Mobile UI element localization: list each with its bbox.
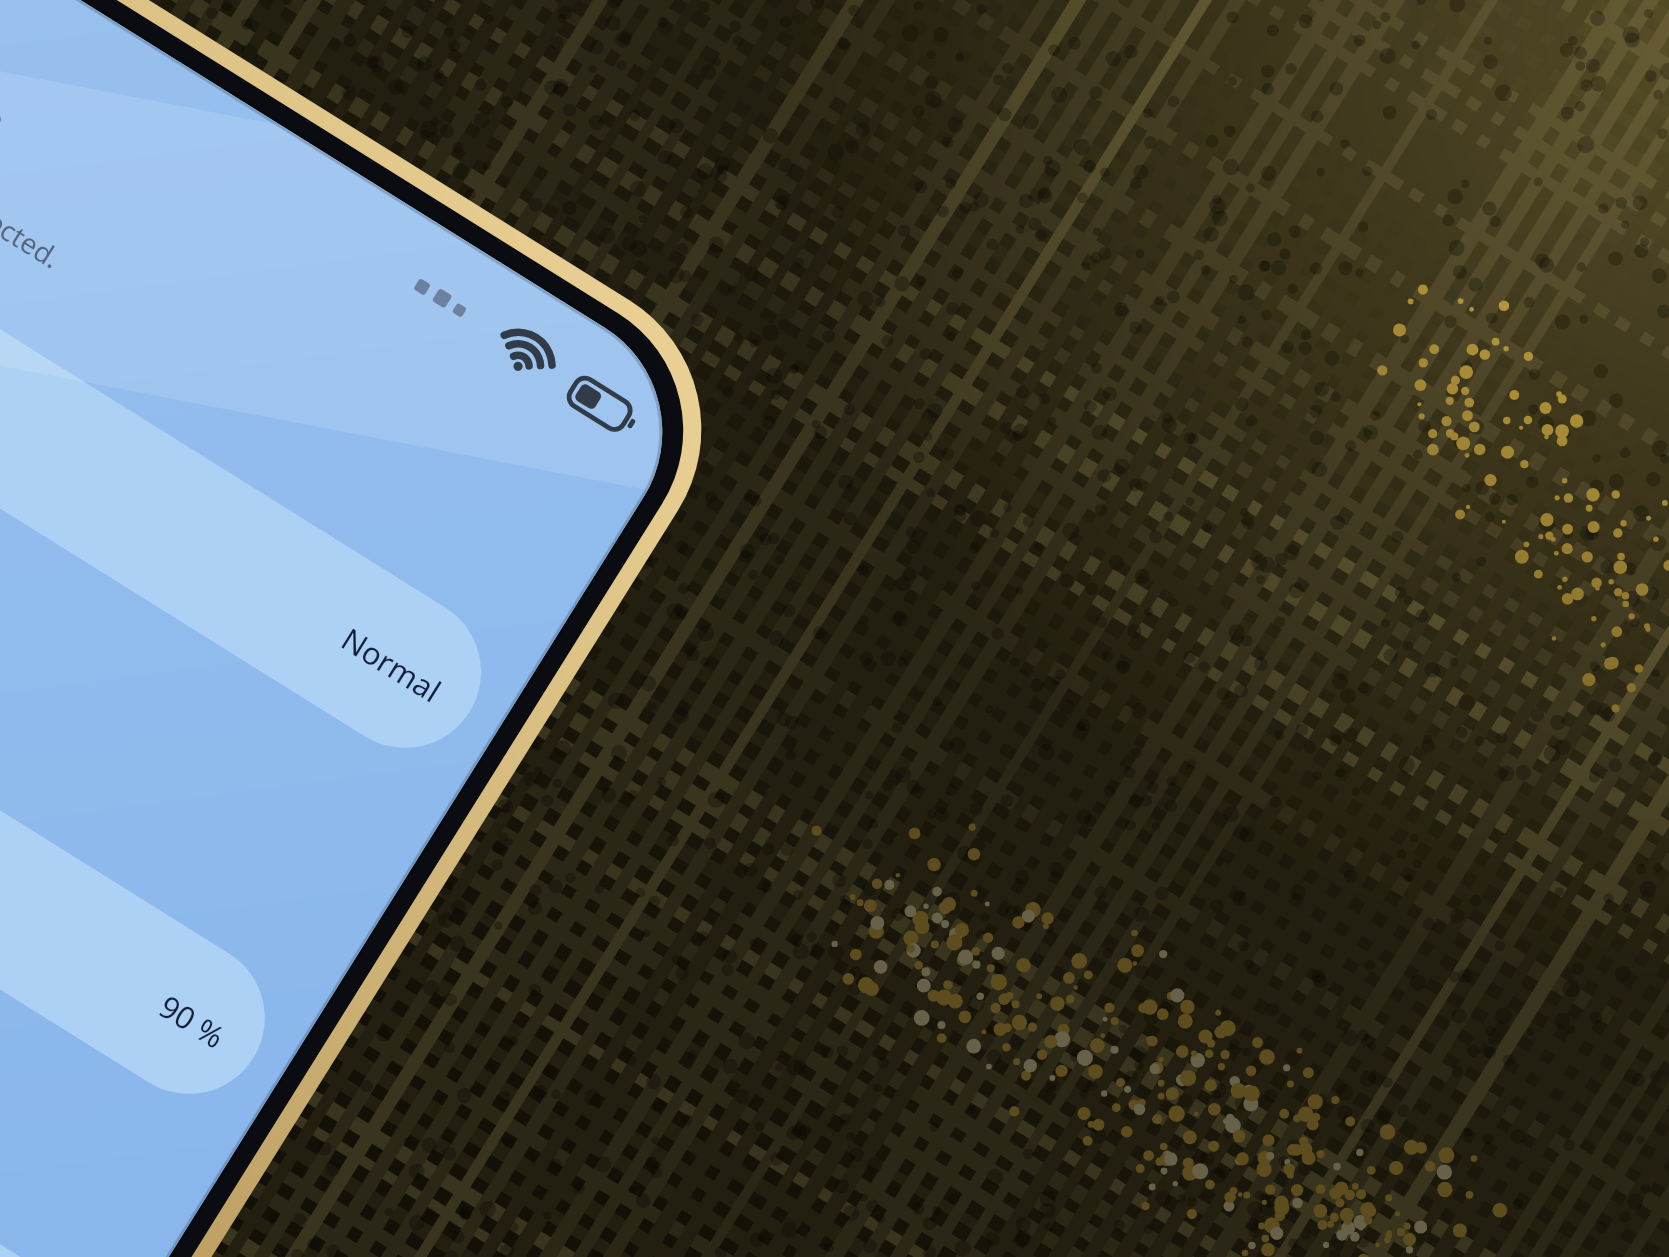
button[interactable]: Photo of a phone showing the Battery Hea… [0,0,1669,1257]
